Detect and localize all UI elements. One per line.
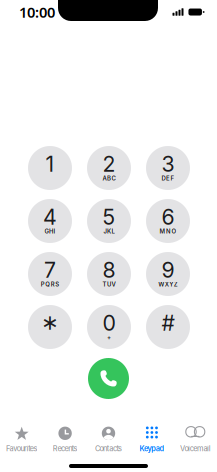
staticText: 3 xyxy=(161,151,174,177)
button[interactable]: 1 xyxy=(28,146,72,190)
button[interactable]: Favourites xyxy=(0,420,43,460)
staticText: ∗ xyxy=(41,310,59,335)
staticText: 9 xyxy=(161,257,174,283)
button[interactable]: ∗ xyxy=(28,305,72,349)
staticText: DEF xyxy=(161,175,175,182)
staticText: 10:00 xyxy=(19,2,55,22)
staticText: 4 xyxy=(43,204,57,230)
button[interactable]: 0 xyxy=(87,305,131,349)
button[interactable]: 8 xyxy=(87,252,131,296)
staticText: 8 xyxy=(102,257,115,283)
staticText: PQRS xyxy=(41,281,59,288)
button[interactable]: Call xyxy=(88,358,129,399)
staticText: 2 xyxy=(102,151,115,177)
staticText: 0 xyxy=(102,310,115,336)
staticText: Keypad xyxy=(139,444,164,453)
staticText: 5 xyxy=(102,204,115,230)
button[interactable]: Keypad xyxy=(130,420,174,460)
button[interactable]: Recents xyxy=(43,420,87,460)
staticText: ABC xyxy=(102,175,116,182)
staticText: Contacts xyxy=(95,444,122,453)
button[interactable]: 7 xyxy=(28,252,72,296)
button[interactable]: Contacts xyxy=(87,420,130,460)
staticText: 7 xyxy=(44,257,56,283)
staticText: # xyxy=(161,310,174,336)
button[interactable]: # xyxy=(146,305,190,349)
button[interactable]: 3 xyxy=(146,146,190,190)
staticText: GHI xyxy=(44,228,56,235)
staticText: Recents xyxy=(53,444,77,453)
staticText: + xyxy=(107,334,111,341)
staticText: Voicemail xyxy=(180,444,211,453)
button[interactable]: 4 xyxy=(28,199,72,243)
button[interactable]: 5 xyxy=(87,199,131,243)
button[interactable]: 9 xyxy=(146,252,190,296)
staticText: 6 xyxy=(161,204,174,230)
button[interactable]: 2 xyxy=(87,146,131,190)
staticText: JKL xyxy=(103,228,115,235)
staticText: WXYZ xyxy=(158,281,178,288)
staticText: TUV xyxy=(102,281,116,288)
staticText: MNO xyxy=(159,228,177,235)
staticText: 1 xyxy=(45,151,54,177)
staticText: Favourites xyxy=(6,444,37,453)
button[interactable]: Voicemail xyxy=(174,420,217,460)
button[interactable]: 6 xyxy=(146,199,190,243)
